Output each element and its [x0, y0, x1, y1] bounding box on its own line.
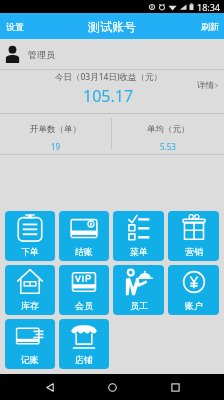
button[interactable]: 记账 — [5, 319, 55, 369]
staticText: 结账 — [75, 246, 93, 257]
staticText: 测试账号 — [88, 19, 136, 34]
staticText: 员工 — [130, 300, 148, 311]
button[interactable]: 管理员 — [0, 39, 224, 69]
staticText: 设置 — [6, 21, 24, 32]
staticText: 单均（元） — [147, 124, 190, 135]
button[interactable]: 库存 — [5, 265, 55, 315]
button[interactable]: 营销 — [168, 211, 219, 261]
button[interactable]: 店铺 — [59, 319, 109, 369]
staticText: 105.17 — [83, 85, 134, 107]
button[interactable]: Recents — [162, 374, 188, 400]
staticText: 店铺 — [75, 354, 93, 365]
button[interactable]: 下单 — [5, 211, 55, 261]
button[interactable]: 开单数（单） — [0, 114, 111, 154]
staticText: 库存 — [21, 300, 39, 311]
staticText: 管理员 — [28, 49, 55, 60]
button[interactable]: 刷新 — [191, 13, 224, 39]
button[interactable]: 结账 — [59, 211, 109, 261]
staticText: 今日（03月14日)收益（元） — [55, 71, 162, 83]
staticText: 开单数（单） — [30, 124, 81, 135]
button[interactable]: 详情 — [191, 76, 224, 95]
staticText: 18:34 — [197, 1, 221, 13]
button[interactable]: 账户 — [168, 265, 219, 315]
button[interactable]: 会员 — [59, 265, 109, 315]
staticText: 下单 — [21, 246, 39, 257]
staticText: 账户 — [185, 300, 203, 311]
button[interactable]: 员工 — [113, 265, 164, 315]
button[interactable]: 菜单 — [113, 211, 164, 261]
staticText: 5.53 — [160, 141, 176, 152]
staticText: 19 — [51, 141, 61, 152]
staticText: 记账 — [21, 354, 39, 365]
staticText: 刷新 — [201, 21, 219, 32]
staticText: 详情 — [197, 80, 214, 91]
staticText: 会员 — [75, 300, 93, 311]
button[interactable]: Home — [99, 374, 125, 400]
button[interactable]: 单均（元） — [112, 114, 224, 154]
button[interactable]: Back — [37, 374, 63, 400]
staticText: 营销 — [185, 246, 203, 257]
staticText: 菜单 — [130, 246, 148, 257]
button[interactable]: 设置 — [0, 13, 34, 39]
